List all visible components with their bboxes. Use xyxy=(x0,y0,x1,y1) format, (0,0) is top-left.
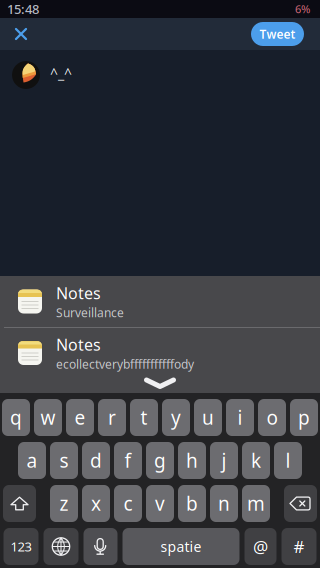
staticText: i xyxy=(237,405,242,430)
staticText: c xyxy=(123,491,132,516)
button[interactable]: Tweet xyxy=(251,22,304,46)
button[interactable]: i xyxy=(226,399,254,436)
button[interactable]: m xyxy=(242,485,270,522)
staticText: z xyxy=(59,491,68,516)
button[interactable]: b xyxy=(178,485,206,522)
staticText: x xyxy=(91,491,101,516)
button[interactable]: s xyxy=(50,442,78,479)
button[interactable]: Dictate xyxy=(83,528,117,565)
staticText: v xyxy=(155,491,165,516)
staticText: j xyxy=(221,448,226,473)
button[interactable]: j xyxy=(210,442,238,479)
staticText: w xyxy=(40,405,55,430)
staticText: h xyxy=(186,448,198,473)
staticText: g xyxy=(154,448,166,473)
button[interactable]: spatie xyxy=(122,528,239,565)
button[interactable]: Next keyboard xyxy=(43,528,78,565)
button[interactable]: e xyxy=(66,399,94,436)
staticText: k xyxy=(251,448,261,473)
button[interactable]: k xyxy=(242,442,270,479)
button[interactable]: l xyxy=(274,442,302,479)
staticText: 123 xyxy=(10,538,31,555)
button[interactable]: d xyxy=(82,442,110,479)
button[interactable]: r xyxy=(98,399,126,436)
button[interactable]: Delete xyxy=(284,485,317,522)
button[interactable]: c xyxy=(114,485,142,522)
staticText: @ xyxy=(253,535,268,558)
button[interactable]: 123 xyxy=(3,528,38,565)
staticText: e xyxy=(74,405,85,430)
staticText: n xyxy=(218,491,230,516)
staticText: Tweet xyxy=(259,26,295,42)
button[interactable]: p xyxy=(290,399,318,436)
button[interactable]: t xyxy=(130,399,158,436)
staticText: Notes xyxy=(56,282,101,304)
button[interactable]: o xyxy=(258,399,286,436)
button[interactable]: q xyxy=(2,399,30,436)
button[interactable]: n xyxy=(210,485,238,522)
button[interactable]: x xyxy=(82,485,110,522)
button[interactable]: Notes xyxy=(0,328,320,378)
staticText: o xyxy=(266,405,277,430)
button[interactable]: Close xyxy=(0,18,35,50)
button[interactable]: Notes xyxy=(0,276,320,327)
staticText: a xyxy=(26,448,37,473)
staticText: ecollectverybfffffffffffody xyxy=(56,356,194,372)
button[interactable]: h xyxy=(178,442,206,479)
staticText: d xyxy=(90,448,102,473)
staticText: ^_^ xyxy=(50,64,72,83)
button[interactable]: Dismiss suggestions xyxy=(0,378,320,393)
button[interactable]: @ xyxy=(244,528,276,565)
button[interactable]: g xyxy=(146,442,174,479)
staticText: 6% xyxy=(295,2,310,16)
staticText: s xyxy=(59,448,68,473)
button[interactable]: Shift xyxy=(3,485,36,522)
button[interactable]: v xyxy=(146,485,174,522)
button[interactable]: u xyxy=(194,399,222,436)
staticText: t xyxy=(140,405,147,430)
staticText: q xyxy=(10,405,22,430)
button[interactable]: # xyxy=(281,528,316,565)
staticText: p xyxy=(298,405,310,430)
staticText: y xyxy=(171,405,181,430)
staticText: b xyxy=(186,491,198,516)
staticText: 15:48 xyxy=(7,0,39,18)
staticText: Surveillance xyxy=(56,305,124,321)
staticText: f xyxy=(124,448,131,473)
button[interactable]: w xyxy=(34,399,62,436)
button[interactable]: z xyxy=(50,485,78,522)
staticText: spatie xyxy=(160,537,201,556)
button[interactable]: a xyxy=(18,442,46,479)
staticText: # xyxy=(293,535,304,558)
staticText: Notes xyxy=(56,334,101,355)
button[interactable]: f xyxy=(114,442,142,479)
staticText: l xyxy=(285,448,290,473)
staticText: u xyxy=(202,405,214,430)
staticText: r xyxy=(108,405,116,430)
button[interactable]: y xyxy=(162,399,190,436)
staticText: m xyxy=(247,491,265,516)
